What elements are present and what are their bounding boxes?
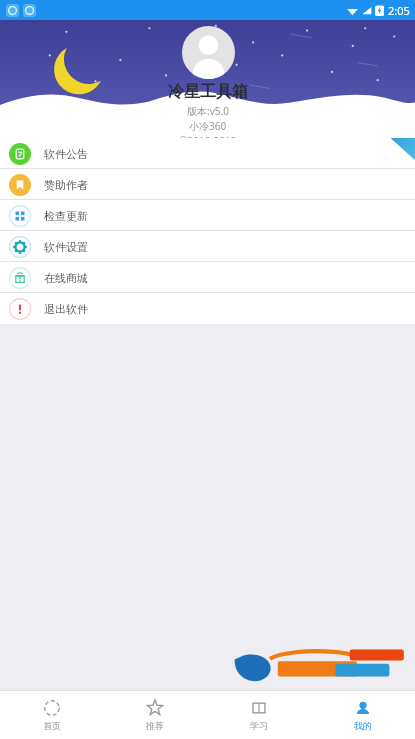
button[interactable]: 检查更新 <box>0 200 415 231</box>
staticText: 版本:v5.0 <box>187 104 229 118</box>
button[interactable]: 在线商城 <box>0 262 415 293</box>
button[interactable]: 推荐 <box>103 691 207 739</box>
staticText: 学习 <box>250 720 268 731</box>
staticText: 在线商城 <box>44 271 88 285</box>
staticText: 我的 <box>354 720 372 731</box>
button[interactable]: 软件设置 <box>0 231 415 262</box>
staticText: 首页 <box>43 720 61 731</box>
button[interactable]: 退出软件 <box>0 293 415 324</box>
staticText: 赞助作者 <box>44 178 88 192</box>
button[interactable]: 软件公告 <box>0 138 415 169</box>
staticText: 2:05 <box>388 3 410 18</box>
staticText: 退出软件 <box>44 302 88 316</box>
staticText: 软件设置 <box>44 240 88 254</box>
staticText: 小冷360 <box>189 119 227 133</box>
button[interactable]: Avatar <box>182 26 235 79</box>
button[interactable]: 我的 <box>311 691 415 739</box>
staticText: 检查更新 <box>44 209 88 223</box>
staticText: ©2018-2019 <box>179 134 237 138</box>
button[interactable]: 学习 <box>207 691 311 739</box>
button[interactable]: 首页 <box>0 691 103 739</box>
staticText: 冷星工具箱 <box>168 82 248 102</box>
staticText: 软件公告 <box>44 147 88 161</box>
staticText: 推荐 <box>146 720 164 731</box>
button[interactable]: 赞助作者 <box>0 169 415 200</box>
